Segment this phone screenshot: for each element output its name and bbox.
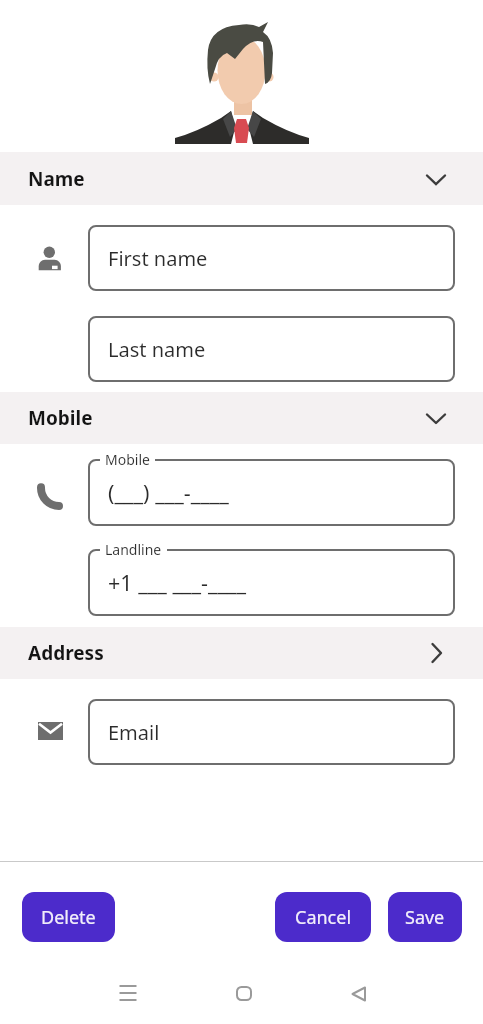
staticText: Address: [28, 640, 104, 666]
staticText: Name: [28, 166, 85, 192]
staticText: (___) ___-____: [108, 478, 229, 507]
button[interactable]: [119, 985, 137, 1001]
button[interactable]: Email: [88, 699, 455, 765]
staticText: Landline: [105, 540, 162, 559]
button[interactable]: Address: [0, 627, 483, 679]
button[interactable]: First name: [88, 225, 455, 291]
staticText: Mobile: [105, 450, 150, 469]
button[interactable]: +1 ___ ___-____: [88, 549, 455, 616]
button[interactable]: [351, 986, 366, 1002]
staticText: Delete: [41, 905, 96, 930]
staticText: Cancel: [295, 905, 352, 930]
button[interactable]: Cancel: [275, 892, 371, 942]
staticText: +1 ___ ___-____: [108, 568, 247, 597]
button[interactable]: Name: [0, 152, 483, 205]
button[interactable]: Save: [388, 892, 462, 942]
button[interactable]: [236, 986, 252, 1001]
button[interactable]: (___) ___-____: [88, 459, 455, 526]
button[interactable]: Mobile: [0, 392, 483, 444]
button[interactable]: Delete: [22, 892, 115, 942]
staticText: Save: [405, 905, 445, 930]
staticText: Last name: [108, 336, 206, 363]
staticText: Mobile: [28, 405, 93, 431]
staticText: Email: [108, 719, 160, 746]
button[interactable]: Last name: [88, 316, 455, 382]
staticText: First name: [108, 245, 208, 272]
